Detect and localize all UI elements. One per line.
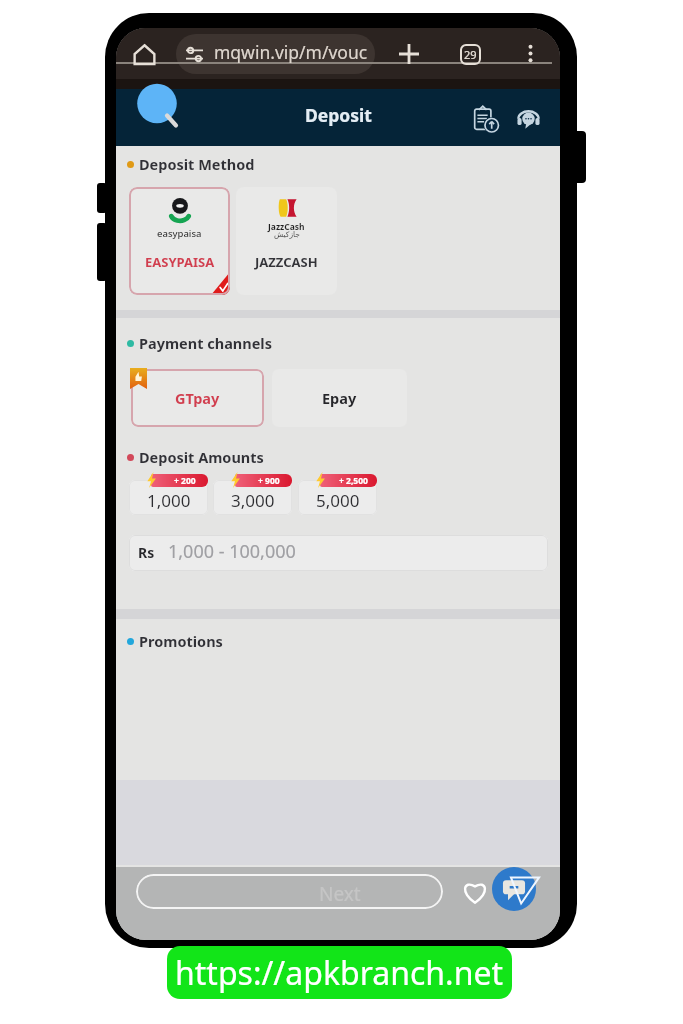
staticText: GTpay bbox=[175, 388, 220, 408]
staticText: Epay bbox=[322, 388, 357, 408]
button[interactable]: Home bbox=[130, 40, 158, 68]
button[interactable]: 1,000 bbox=[129, 480, 208, 515]
button[interactable]: Open tabs bbox=[457, 41, 483, 67]
button[interactable]: https://apkbranch.net bbox=[167, 946, 512, 999]
button[interactable]: Site information bbox=[182, 42, 206, 66]
button[interactable]: Epay bbox=[272, 369, 407, 427]
staticText: 5,000 bbox=[316, 489, 360, 512]
staticText: JazzCash bbox=[268, 221, 305, 233]
button[interactable]: 5,000 bbox=[298, 480, 377, 515]
staticText: 1,000 - 100,000 bbox=[168, 539, 296, 564]
staticText: EASYPAISA bbox=[145, 253, 215, 271]
staticText: + 900 bbox=[258, 475, 280, 487]
staticText: Payment channels bbox=[139, 333, 272, 353]
staticText: Next bbox=[319, 881, 361, 907]
staticText: Deposit bbox=[305, 103, 372, 127]
staticText: easypaisa bbox=[157, 227, 202, 240]
button[interactable] bbox=[136, 874, 443, 909]
staticText: JAZZCASH bbox=[255, 253, 318, 271]
staticText: Deposit Amounts bbox=[139, 447, 264, 467]
button[interactable]: Rs bbox=[129, 535, 548, 571]
staticText: mqwin.vip/m/vouc bbox=[214, 40, 368, 64]
staticText: 29 bbox=[464, 47, 477, 62]
button[interactable]: Chat support bbox=[492, 867, 536, 911]
button[interactable]: easypaisa bbox=[129, 187, 230, 295]
staticText: 3,000 bbox=[231, 489, 275, 512]
staticText: + 2,500 bbox=[339, 475, 368, 487]
button[interactable]: Customer service bbox=[513, 104, 543, 134]
staticText: https://apkbranch.net bbox=[175, 951, 504, 995]
button[interactable]: JazzCash bbox=[236, 187, 337, 295]
staticText: جازکیش bbox=[274, 230, 300, 239]
staticText: Promotions bbox=[139, 631, 223, 651]
staticText: + 200 bbox=[174, 475, 196, 487]
button[interactable]: GTpay bbox=[131, 369, 264, 427]
button[interactable]: More options bbox=[519, 42, 541, 64]
staticText: 1,000 bbox=[147, 489, 191, 512]
button[interactable]: Favorite bbox=[459, 876, 491, 908]
staticText: Deposit Method bbox=[139, 154, 255, 174]
button[interactable]: 3,000 bbox=[213, 480, 292, 515]
staticText: Rs bbox=[138, 543, 155, 562]
button[interactable]: New tab bbox=[395, 40, 423, 68]
button[interactable]: Deposit records bbox=[470, 103, 500, 133]
